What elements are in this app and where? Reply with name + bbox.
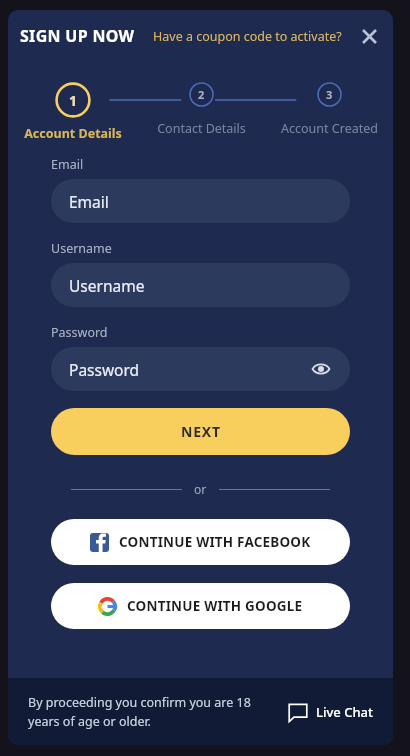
staticText: NEXT	[181, 422, 221, 441]
staticText: Password	[69, 359, 140, 380]
staticText: or	[194, 481, 207, 497]
button[interactable]: Username	[51, 263, 350, 307]
button[interactable]: Email	[51, 179, 350, 223]
staticText: Email	[51, 156, 84, 173]
button[interactable]: 2	[137, 62, 265, 137]
button[interactable]: CONTINUE WITH FACEBOOK	[51, 519, 350, 565]
button[interactable]: 1	[8, 62, 137, 142]
staticText: CONTINUE WITH GOOGLE	[127, 597, 303, 615]
staticText: Username	[51, 240, 112, 257]
staticText: SIGN UP NOW	[20, 25, 135, 47]
staticText: Have a coupon code to activate?	[153, 28, 342, 45]
button[interactable]: Live Chat	[284, 698, 377, 726]
staticText: Email	[69, 191, 109, 212]
staticText: CONTINUE WITH FACEBOOK	[119, 533, 311, 551]
button[interactable]: Show password	[310, 358, 332, 380]
staticText: Username	[69, 275, 145, 296]
staticText: 3	[326, 87, 333, 102]
staticText: Password	[51, 324, 108, 341]
staticText: 1	[69, 91, 78, 110]
staticText: Live Chat	[316, 703, 373, 721]
staticText: By proceeding you confirm you are 18 yea…	[28, 694, 251, 730]
button[interactable]: 3	[265, 62, 393, 137]
button[interactable]: CONTINUE WITH GOOGLE	[51, 583, 350, 629]
button[interactable]: NEXT	[51, 408, 350, 455]
button[interactable]: Close	[355, 22, 383, 50]
staticText: Account Details	[24, 125, 122, 142]
button[interactable]: Password	[51, 347, 350, 391]
staticText: 2	[198, 87, 205, 102]
staticText: Contact Details	[157, 120, 246, 137]
staticText: Account Created	[281, 120, 378, 137]
button[interactable]: Have a coupon code to activate?	[153, 28, 342, 45]
